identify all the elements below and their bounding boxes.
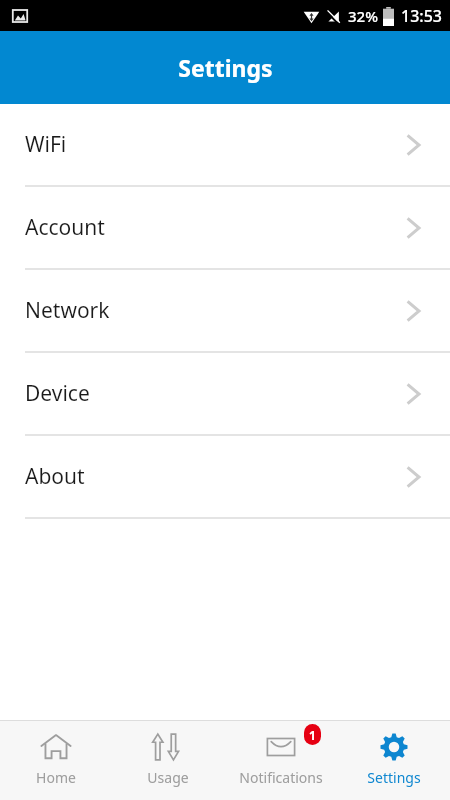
button[interactable]: About [0, 436, 450, 517]
button[interactable]: Account [0, 187, 450, 268]
button[interactable]: Network [0, 270, 450, 351]
staticText: Notifications [239, 768, 323, 787]
staticText: Home [36, 768, 76, 787]
button[interactable]: Notifications [224, 721, 337, 800]
staticText: About [25, 462, 398, 491]
staticText: Settings [367, 768, 421, 787]
staticText: Usage [147, 768, 189, 787]
button[interactable]: Device [0, 353, 450, 434]
staticText: 13:53 [401, 5, 442, 27]
button[interactable]: WiFi [0, 104, 450, 185]
staticText: WiFi [25, 130, 398, 159]
button[interactable]: Settings [337, 721, 450, 800]
staticText: 32% [348, 6, 378, 26]
staticText: 1 [309, 727, 316, 743]
staticText: Settings [178, 52, 273, 83]
button[interactable]: Home [0, 721, 112, 800]
staticText: Device [25, 379, 398, 408]
button[interactable]: Usage [112, 721, 224, 800]
staticText: Network [25, 296, 398, 325]
staticText: Account [25, 213, 398, 242]
